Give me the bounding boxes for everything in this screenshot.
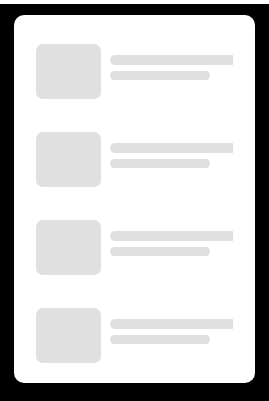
button[interactable]: Loading list item 4 bbox=[14, 291, 255, 379]
button[interactable]: Loading list item 1 bbox=[14, 27, 255, 115]
button[interactable]: Loading list item 3 bbox=[14, 203, 255, 291]
button[interactable]: Loading list item 2 bbox=[14, 115, 255, 203]
